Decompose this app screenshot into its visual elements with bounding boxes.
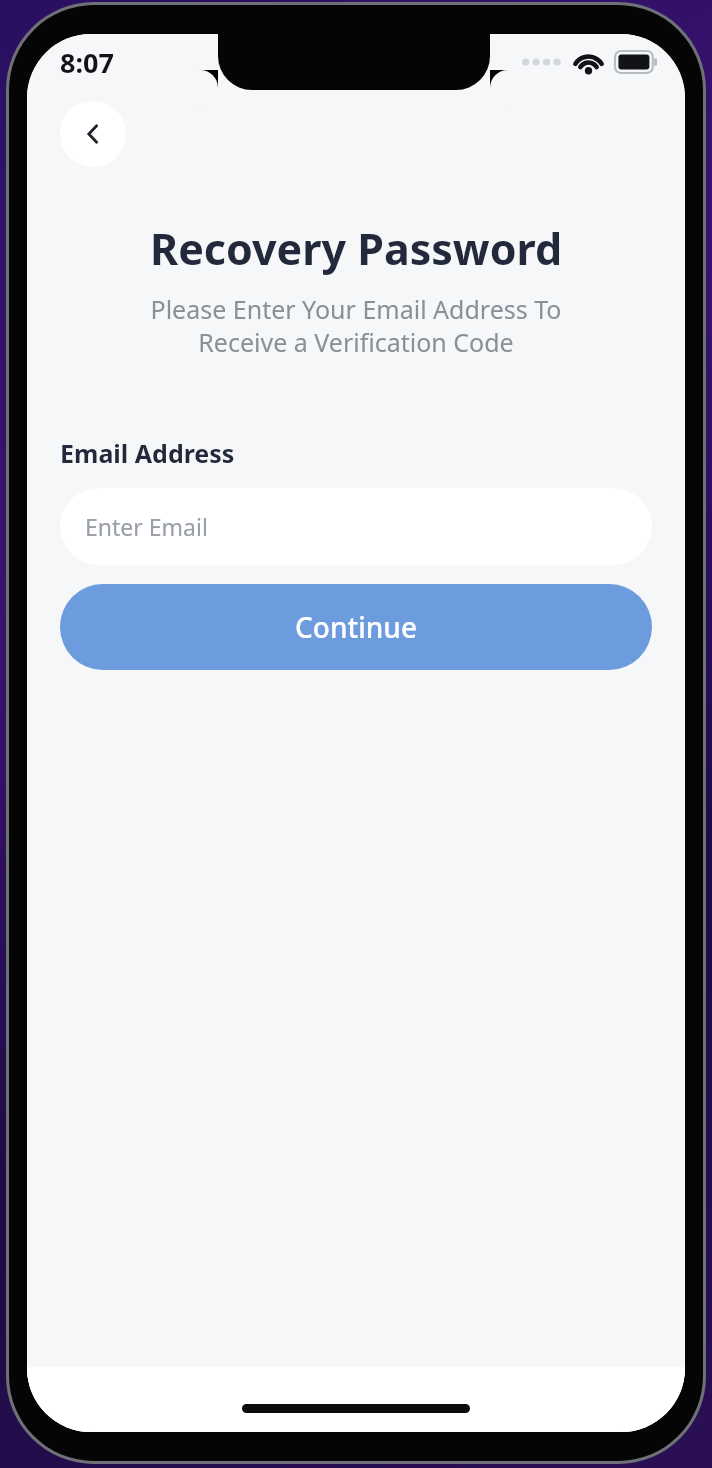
staticText: Recovery Password <box>27 219 685 278</box>
staticText: Continue <box>295 608 417 646</box>
staticText: 8:07 <box>60 44 114 81</box>
staticText: Email Address <box>60 436 235 470</box>
button[interactable]: Enter Email <box>60 488 652 565</box>
button[interactable]: Back <box>60 101 126 167</box>
staticText: Please Enter Your Email Address To Recei… <box>51 292 661 359</box>
button[interactable]: Continue <box>60 584 652 670</box>
staticText: Enter Email <box>85 511 208 542</box>
